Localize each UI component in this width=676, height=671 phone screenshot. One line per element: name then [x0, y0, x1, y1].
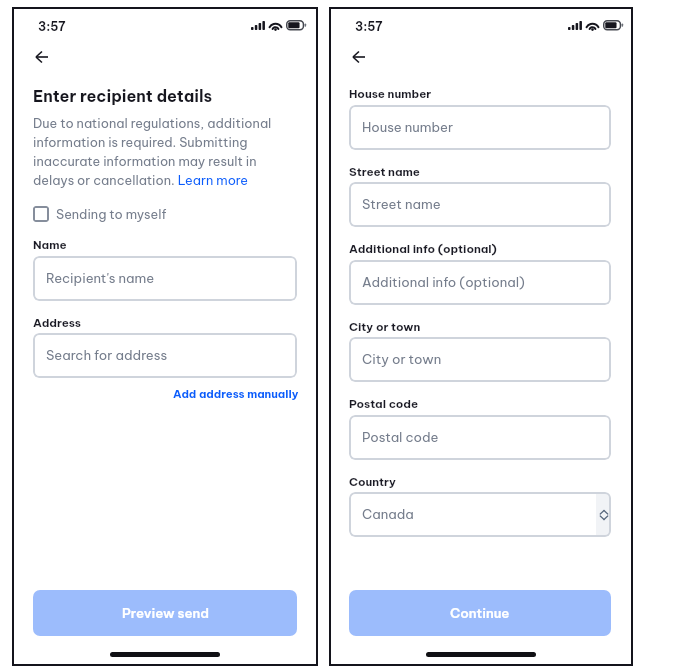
- staticText: Postal code: [362, 429, 439, 446]
- staticText: Additional info (optional): [349, 241, 497, 256]
- staticText: Recipient's name: [46, 270, 155, 287]
- staticText: Street name: [362, 196, 441, 213]
- button[interactable]: Recipient's name: [33, 256, 297, 301]
- button[interactable]: Continue: [349, 590, 611, 636]
- staticText: Address: [33, 315, 82, 330]
- button[interactable]: Add address manually: [173, 387, 299, 401]
- staticText: Preview send: [122, 605, 209, 622]
- staticText: House number: [349, 86, 432, 101]
- staticText: City or town: [362, 351, 442, 368]
- staticText: Country: [349, 474, 396, 489]
- button[interactable]: Search for address: [33, 333, 297, 378]
- button[interactable]: House number: [349, 105, 611, 150]
- staticText: Sending to myself: [56, 206, 167, 222]
- staticText: Due to national regulations, additional …: [33, 115, 275, 188]
- staticText: Name: [33, 237, 67, 252]
- staticText: Enter recipient details: [33, 86, 213, 106]
- button[interactable]: Postal code: [349, 415, 611, 460]
- button[interactable]: Back: [340, 39, 376, 75]
- staticText: Street name: [349, 164, 420, 179]
- staticText: Postal code: [349, 396, 419, 411]
- button[interactable]: City or town: [349, 337, 611, 382]
- staticText: Additional info (optional): [362, 274, 525, 291]
- staticText: Continue: [450, 605, 510, 622]
- staticText: 3:57: [355, 19, 383, 34]
- button[interactable]: Street name: [349, 182, 611, 227]
- button[interactable]: Canada: [349, 492, 611, 537]
- button[interactable]: Sending to myself: [33, 206, 167, 222]
- staticText: Canada: [362, 506, 414, 523]
- button[interactable]: Additional info (optional): [349, 260, 611, 305]
- staticText: 3:57: [38, 19, 66, 34]
- staticText: House number: [362, 119, 454, 136]
- button[interactable]: Back: [23, 39, 59, 75]
- staticText: City or town: [349, 319, 421, 334]
- staticText: Search for address: [46, 347, 168, 364]
- button[interactable]: Preview send: [33, 590, 297, 636]
